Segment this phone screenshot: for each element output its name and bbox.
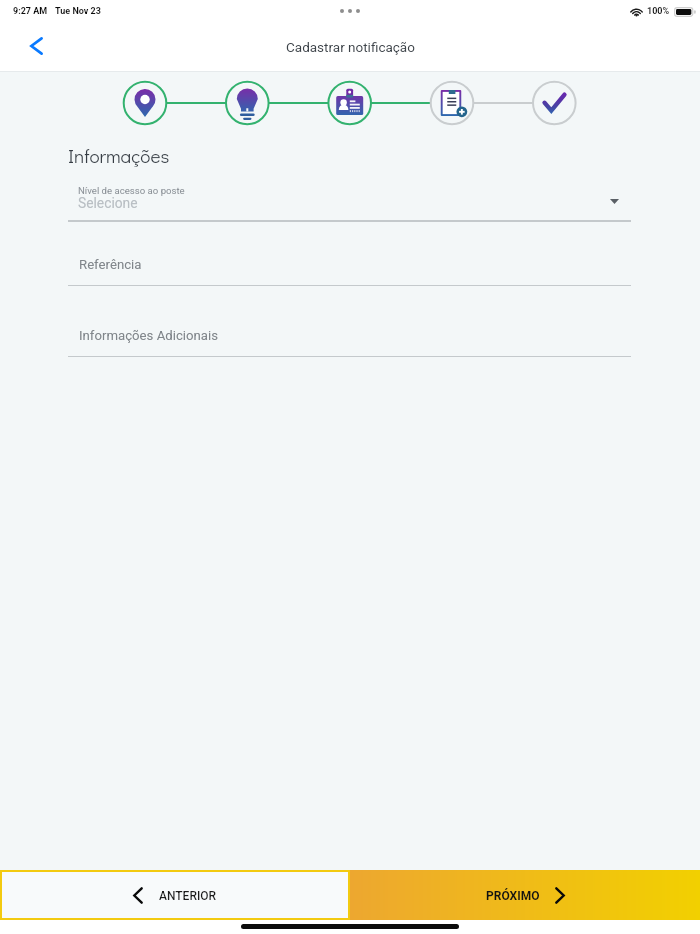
button[interactable]: ANTERIOR: [2, 872, 348, 918]
staticText: Informações Adicionais: [79, 328, 219, 343]
staticText: Referência: [79, 257, 142, 272]
staticText: ANTERIOR: [159, 889, 217, 903]
staticText: Tue Nov 23: [55, 6, 101, 17]
staticText: PRÓXIMO: [486, 889, 540, 903]
staticText: Selecione: [78, 195, 138, 211]
button[interactable]: Nível de acesso ao poste: [68, 181, 632, 222]
staticText: 100%: [647, 6, 670, 17]
staticText: Cadastrar notificação: [286, 39, 415, 55]
button[interactable]: Referência: [68, 252, 632, 288]
staticText: 9:27 AM: [13, 6, 48, 17]
staticText: Informações: [68, 143, 170, 168]
staticText: Nível de acesso ao poste: [78, 185, 185, 196]
button[interactable]: Back: [14, 25, 58, 69]
button[interactable]: Informações Adicionais: [68, 323, 632, 359]
button[interactable]: PRÓXIMO: [350, 870, 700, 920]
